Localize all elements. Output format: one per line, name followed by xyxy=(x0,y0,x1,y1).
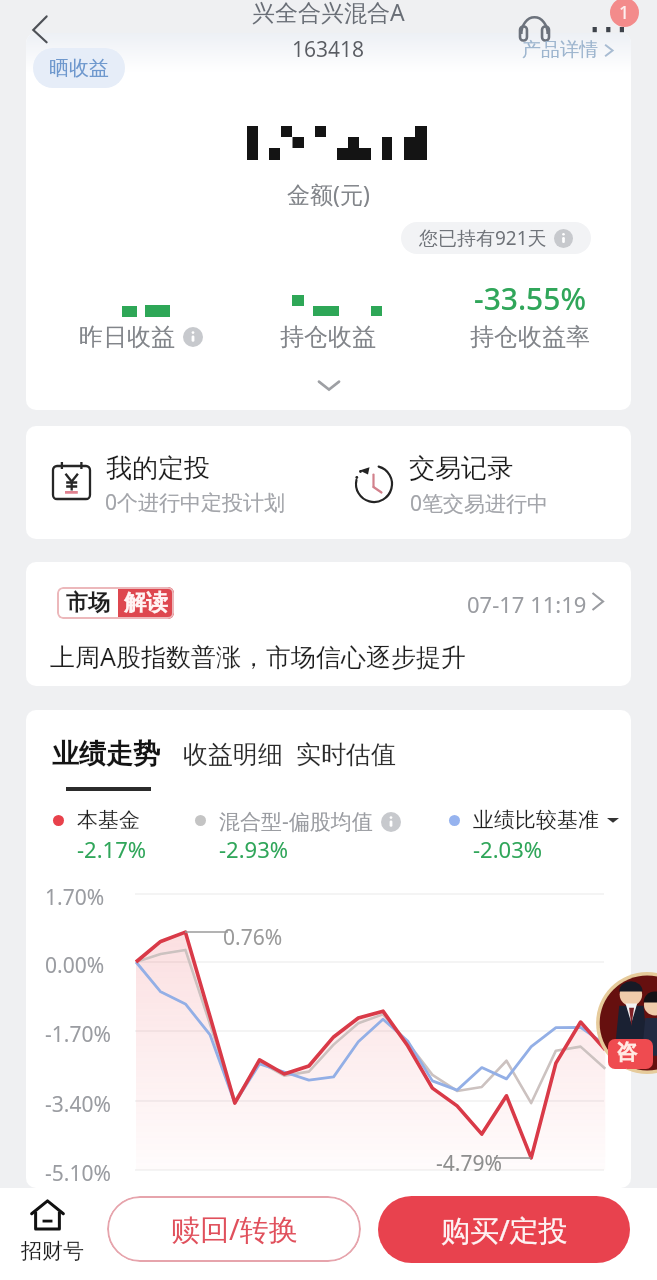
staticText: -3.40% xyxy=(45,1090,111,1119)
button[interactable]: More options xyxy=(582,12,630,46)
staticText: 招财号 xyxy=(21,1238,84,1264)
staticText: 购买/定投 xyxy=(441,1210,568,1250)
staticText: 晒收益 xyxy=(49,56,109,81)
staticText: 产品详情 xyxy=(522,38,598,62)
staticText: 0.76% xyxy=(223,923,283,952)
button[interactable]: 交易记录 xyxy=(326,426,631,539)
staticText: -1.70% xyxy=(45,1020,111,1049)
staticText: 持仓收益 xyxy=(280,322,376,352)
staticText: 07-17 11:19 xyxy=(467,589,587,619)
staticText: 交易记录 xyxy=(409,452,513,485)
button[interactable]: 实时估值 xyxy=(296,739,396,770)
staticText: 解读 xyxy=(124,589,168,617)
staticText: -5.10% xyxy=(45,1159,111,1188)
staticText: 市场 xyxy=(66,589,110,617)
button[interactable]: 市场 xyxy=(26,562,631,686)
staticText: 混合型-偏股均值 xyxy=(219,807,373,836)
staticText: -2.03% xyxy=(473,834,543,864)
staticText: -4.79% xyxy=(436,1149,502,1178)
staticText: -2.93% xyxy=(219,834,289,864)
button[interactable]: Customer service xyxy=(512,6,556,50)
staticText: 昨日收益 xyxy=(79,322,175,352)
button[interactable]: 招财号 xyxy=(0,1188,96,1280)
staticText: 1 xyxy=(619,0,630,25)
staticText: 持仓收益率 xyxy=(470,322,590,352)
button[interactable]: 我的定投 xyxy=(26,426,326,539)
staticText: 上周A股指数普涨，市场信心逐步提升 xyxy=(50,639,466,673)
staticText: 业绩比较基准 xyxy=(473,807,599,833)
button[interactable]: 晒收益 xyxy=(33,48,125,88)
staticText: 赎回/转换 xyxy=(171,1209,298,1249)
staticText: 业绩走势 xyxy=(52,737,160,771)
staticText: 实时估值 xyxy=(296,739,396,770)
staticText: 兴全合兴混合A xyxy=(252,0,405,27)
staticText: 收益明细 xyxy=(183,739,283,770)
button[interactable]: 赎回/转换 xyxy=(107,1196,361,1262)
staticText: 0笔交易进行中 xyxy=(410,489,549,518)
staticText: 您已持有921天 xyxy=(419,225,547,251)
button[interactable]: Expand details xyxy=(26,365,631,405)
button[interactable]: 您已持有921天 xyxy=(401,222,591,254)
staticText: 咨询 xyxy=(616,1039,649,1069)
button[interactable]: 产品详情 xyxy=(522,38,617,62)
staticText: 1.70% xyxy=(45,883,105,912)
staticText: 163418 xyxy=(292,35,365,64)
button[interactable]: 购买/定投 xyxy=(378,1196,630,1263)
staticText: 我的定投 xyxy=(106,452,210,485)
button[interactable]: Back xyxy=(12,7,56,51)
button[interactable]: Consult advisor xyxy=(612,972,657,1074)
staticText: 本基金 xyxy=(77,807,140,833)
staticText: 金额(元) xyxy=(287,178,370,209)
button[interactable]: 收益明细 xyxy=(183,739,283,770)
staticText: 0.00% xyxy=(45,951,105,980)
staticText: -2.17% xyxy=(77,834,147,864)
staticText: -33.55% xyxy=(474,278,586,319)
staticText: 0个进行中定投计划 xyxy=(105,488,286,517)
button[interactable]: 业绩走势 xyxy=(52,737,160,771)
